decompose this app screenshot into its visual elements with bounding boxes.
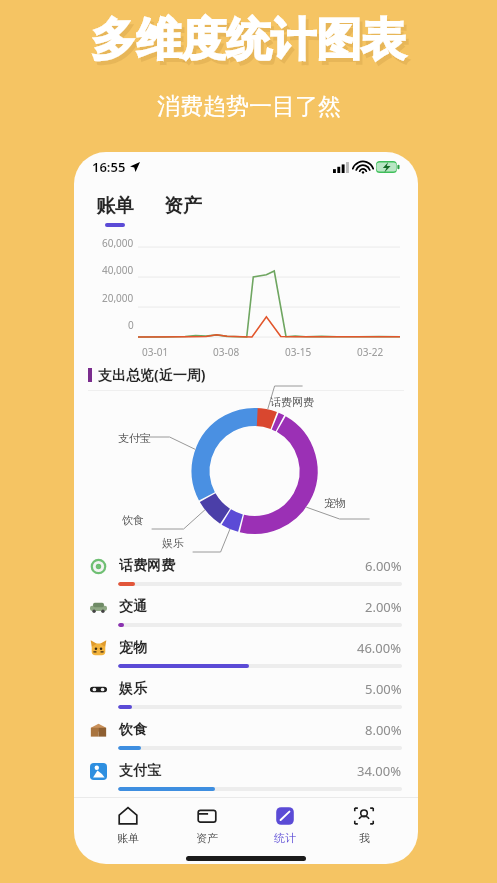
- staticText: 03-22: [357, 345, 384, 359]
- staticText: 8.00%: [365, 721, 402, 739]
- staticText: 46.00%: [357, 639, 402, 657]
- button[interactable]: 账单: [94, 194, 136, 227]
- staticText: 话费网费: [270, 395, 314, 409]
- staticText: 多维度统计图表: [94, 16, 409, 73]
- button[interactable]: 话费网费: [90, 551, 402, 592]
- button[interactable]: 我: [339, 801, 389, 849]
- staticText: 宠物: [119, 639, 147, 657]
- button[interactable]: 宠物: [90, 633, 402, 674]
- staticText: 03-15: [285, 345, 312, 359]
- button[interactable]: 交通: [90, 592, 402, 633]
- button[interactable]: 支付宝: [90, 756, 402, 797]
- button[interactable]: 饮食: [90, 715, 402, 756]
- staticText: 2.00%: [365, 598, 402, 616]
- staticText: 娱乐: [162, 536, 184, 550]
- staticText: 34.00%: [357, 762, 402, 780]
- staticText: 20,000: [102, 291, 134, 305]
- staticText: 03-08: [213, 345, 240, 359]
- staticText: 支付宝: [119, 762, 161, 780]
- staticText: 饮食: [119, 721, 147, 739]
- staticText: 60,000: [102, 236, 134, 250]
- staticText: 03-01: [142, 345, 169, 359]
- button[interactable]: 娱乐: [90, 674, 402, 715]
- staticText: 40,000: [102, 263, 134, 277]
- staticText: 16:55: [92, 158, 126, 176]
- staticText: 支出总览(近一周): [98, 365, 206, 384]
- staticText: 6.00%: [365, 557, 402, 575]
- staticText: 资产: [164, 194, 202, 218]
- staticText: 账单: [96, 194, 134, 218]
- staticText: 账单: [117, 831, 139, 845]
- staticText: 交通: [119, 598, 147, 616]
- staticText: 多维度统计图表: [91, 12, 406, 69]
- button[interactable]: 统计: [260, 801, 310, 849]
- staticText: 话费网费: [119, 557, 175, 575]
- staticText: 宠物: [324, 496, 346, 510]
- staticText: 资产: [196, 831, 218, 845]
- staticText: 支付宝: [118, 431, 151, 445]
- staticText: 统计: [274, 831, 296, 845]
- staticText: 5.00%: [365, 680, 402, 698]
- staticText: 消费趋势一目了然: [157, 92, 341, 121]
- staticText: 0: [128, 318, 134, 332]
- button[interactable]: 资产: [182, 801, 232, 849]
- button[interactable]: 账单: [103, 801, 153, 849]
- staticText: 我: [359, 831, 370, 845]
- staticText: 饮食: [122, 513, 144, 527]
- button[interactable]: 资产: [162, 194, 204, 218]
- staticText: 娱乐: [119, 680, 147, 698]
